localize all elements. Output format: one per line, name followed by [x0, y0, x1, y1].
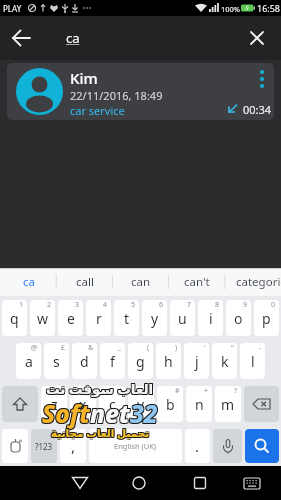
staticText: ca	[66, 29, 80, 47]
staticText: تحميل العاب مجانية	[50, 425, 149, 439]
button[interactable]: can	[113, 268, 169, 296]
staticText: العاب سوفت نت	[45, 381, 153, 399]
staticText: 5	[131, 300, 136, 310]
button[interactable]: 2	[30, 300, 55, 336]
button[interactable]: 5	[114, 300, 139, 336]
staticText: call	[76, 274, 94, 290]
staticText: 32	[129, 397, 157, 430]
staticText: (	[147, 343, 150, 353]
staticText: 22/11/2016, 18:49	[70, 88, 163, 103]
button[interactable]	[0, 16, 44, 60]
button[interactable]: ?	[215, 386, 241, 422]
staticText: m	[221, 395, 235, 414]
staticText: £	[61, 343, 66, 353]
button[interactable]: .	[185, 429, 210, 463]
staticText: t	[124, 309, 130, 328]
button[interactable]: ca	[44, 16, 234, 60]
staticText: 32	[131, 396, 159, 429]
button[interactable]: ?123	[31, 429, 57, 463]
button[interactable]: categories	[225, 268, 281, 296]
staticText: 32	[131, 398, 159, 431]
button[interactable]	[2, 429, 28, 463]
staticText: Soft	[42, 397, 90, 430]
button[interactable]	[118, 466, 162, 500]
staticText: Soft	[42, 396, 90, 429]
button[interactable]: call	[57, 268, 113, 296]
button[interactable]: -	[240, 343, 265, 379]
button[interactable]: 8	[198, 300, 223, 336]
staticText: تحميل العاب مجانية	[52, 427, 151, 441]
staticText: العاب سوفت نت	[47, 381, 155, 399]
staticText: 6	[159, 300, 164, 310]
button[interactable]: )	[156, 343, 181, 379]
button[interactable]: 6	[142, 300, 167, 336]
staticText: net	[90, 396, 130, 429]
button[interactable]: /	[128, 386, 154, 422]
staticText: 7	[187, 300, 192, 310]
button[interactable]	[178, 466, 222, 500]
button[interactable]: @	[16, 343, 41, 379]
staticText: العاب سوفت نت	[46, 381, 154, 399]
button[interactable]: #	[157, 386, 183, 422]
staticText: o	[234, 309, 243, 328]
staticText: العاب سوفت نت	[46, 379, 154, 397]
button[interactable]: Kim	[7, 63, 274, 120]
staticText: العاب سوفت نت	[47, 379, 155, 397]
staticText: net	[91, 396, 131, 429]
staticText: e	[67, 309, 75, 328]
staticText: ?123	[35, 441, 53, 452]
staticText: j	[195, 352, 199, 371]
staticText: العاب سوفت نت	[46, 380, 154, 398]
button[interactable]	[2, 386, 38, 422]
button[interactable]: +	[186, 386, 212, 422]
staticText: +	[204, 386, 209, 396]
staticText: 1	[19, 300, 24, 310]
button[interactable]	[250, 63, 274, 93]
staticText: z	[51, 395, 58, 414]
button[interactable]: 4	[86, 300, 111, 336]
button[interactable]: ca	[0, 268, 57, 296]
button[interactable]	[213, 429, 242, 463]
staticText: can	[131, 274, 151, 290]
staticText: •	[90, 386, 93, 396]
button[interactable]: £	[44, 343, 69, 379]
button[interactable]: 0	[254, 300, 279, 336]
staticText: a	[25, 352, 33, 371]
button[interactable]: _	[100, 343, 125, 379]
button[interactable]: •	[70, 386, 96, 422]
staticText: 32	[130, 396, 158, 429]
button[interactable]: 3	[58, 300, 83, 336]
staticText: العاب سوفت نت	[47, 380, 155, 398]
staticText: @	[31, 343, 38, 353]
staticText: تحميل العاب مجانية	[52, 426, 151, 440]
button[interactable]: '	[184, 343, 209, 379]
button[interactable]: 9	[226, 300, 251, 336]
staticText: net	[89, 396, 129, 429]
button[interactable]: &	[72, 343, 97, 379]
button[interactable]	[244, 386, 279, 422]
staticText: 8	[215, 300, 220, 310]
button[interactable]: English (UK)	[89, 429, 182, 463]
staticText: s	[53, 352, 60, 371]
button[interactable]: 7	[170, 300, 195, 336]
button[interactable]: '	[99, 386, 125, 422]
button[interactable]: can't	[169, 268, 225, 296]
button[interactable]	[245, 429, 279, 463]
staticText: l	[251, 352, 255, 371]
staticText: b	[166, 395, 175, 414]
button[interactable]: ,	[60, 429, 86, 463]
button[interactable]: *	[41, 386, 67, 422]
staticText: d	[80, 352, 89, 371]
staticText: Soft	[41, 397, 89, 430]
staticText: تحميل العاب مجانية	[51, 426, 150, 440]
button[interactable]: 1	[2, 300, 27, 336]
staticText: h	[164, 352, 173, 371]
staticText: .	[195, 436, 200, 456]
button[interactable]: (	[128, 343, 153, 379]
staticText: Soft	[43, 397, 91, 430]
button[interactable]	[58, 466, 102, 500]
staticText: '	[204, 343, 206, 353]
button[interactable]	[230, 466, 274, 500]
button[interactable]: "	[212, 343, 237, 379]
button[interactable]	[237, 16, 281, 60]
